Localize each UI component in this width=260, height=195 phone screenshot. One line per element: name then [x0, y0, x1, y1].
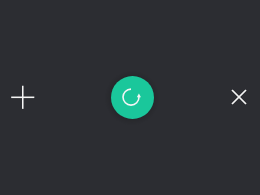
button[interactable]: Refresh	[111, 76, 154, 119]
button[interactable]: Add	[0, 75, 44, 119]
button[interactable]: Close	[217, 75, 260, 119]
